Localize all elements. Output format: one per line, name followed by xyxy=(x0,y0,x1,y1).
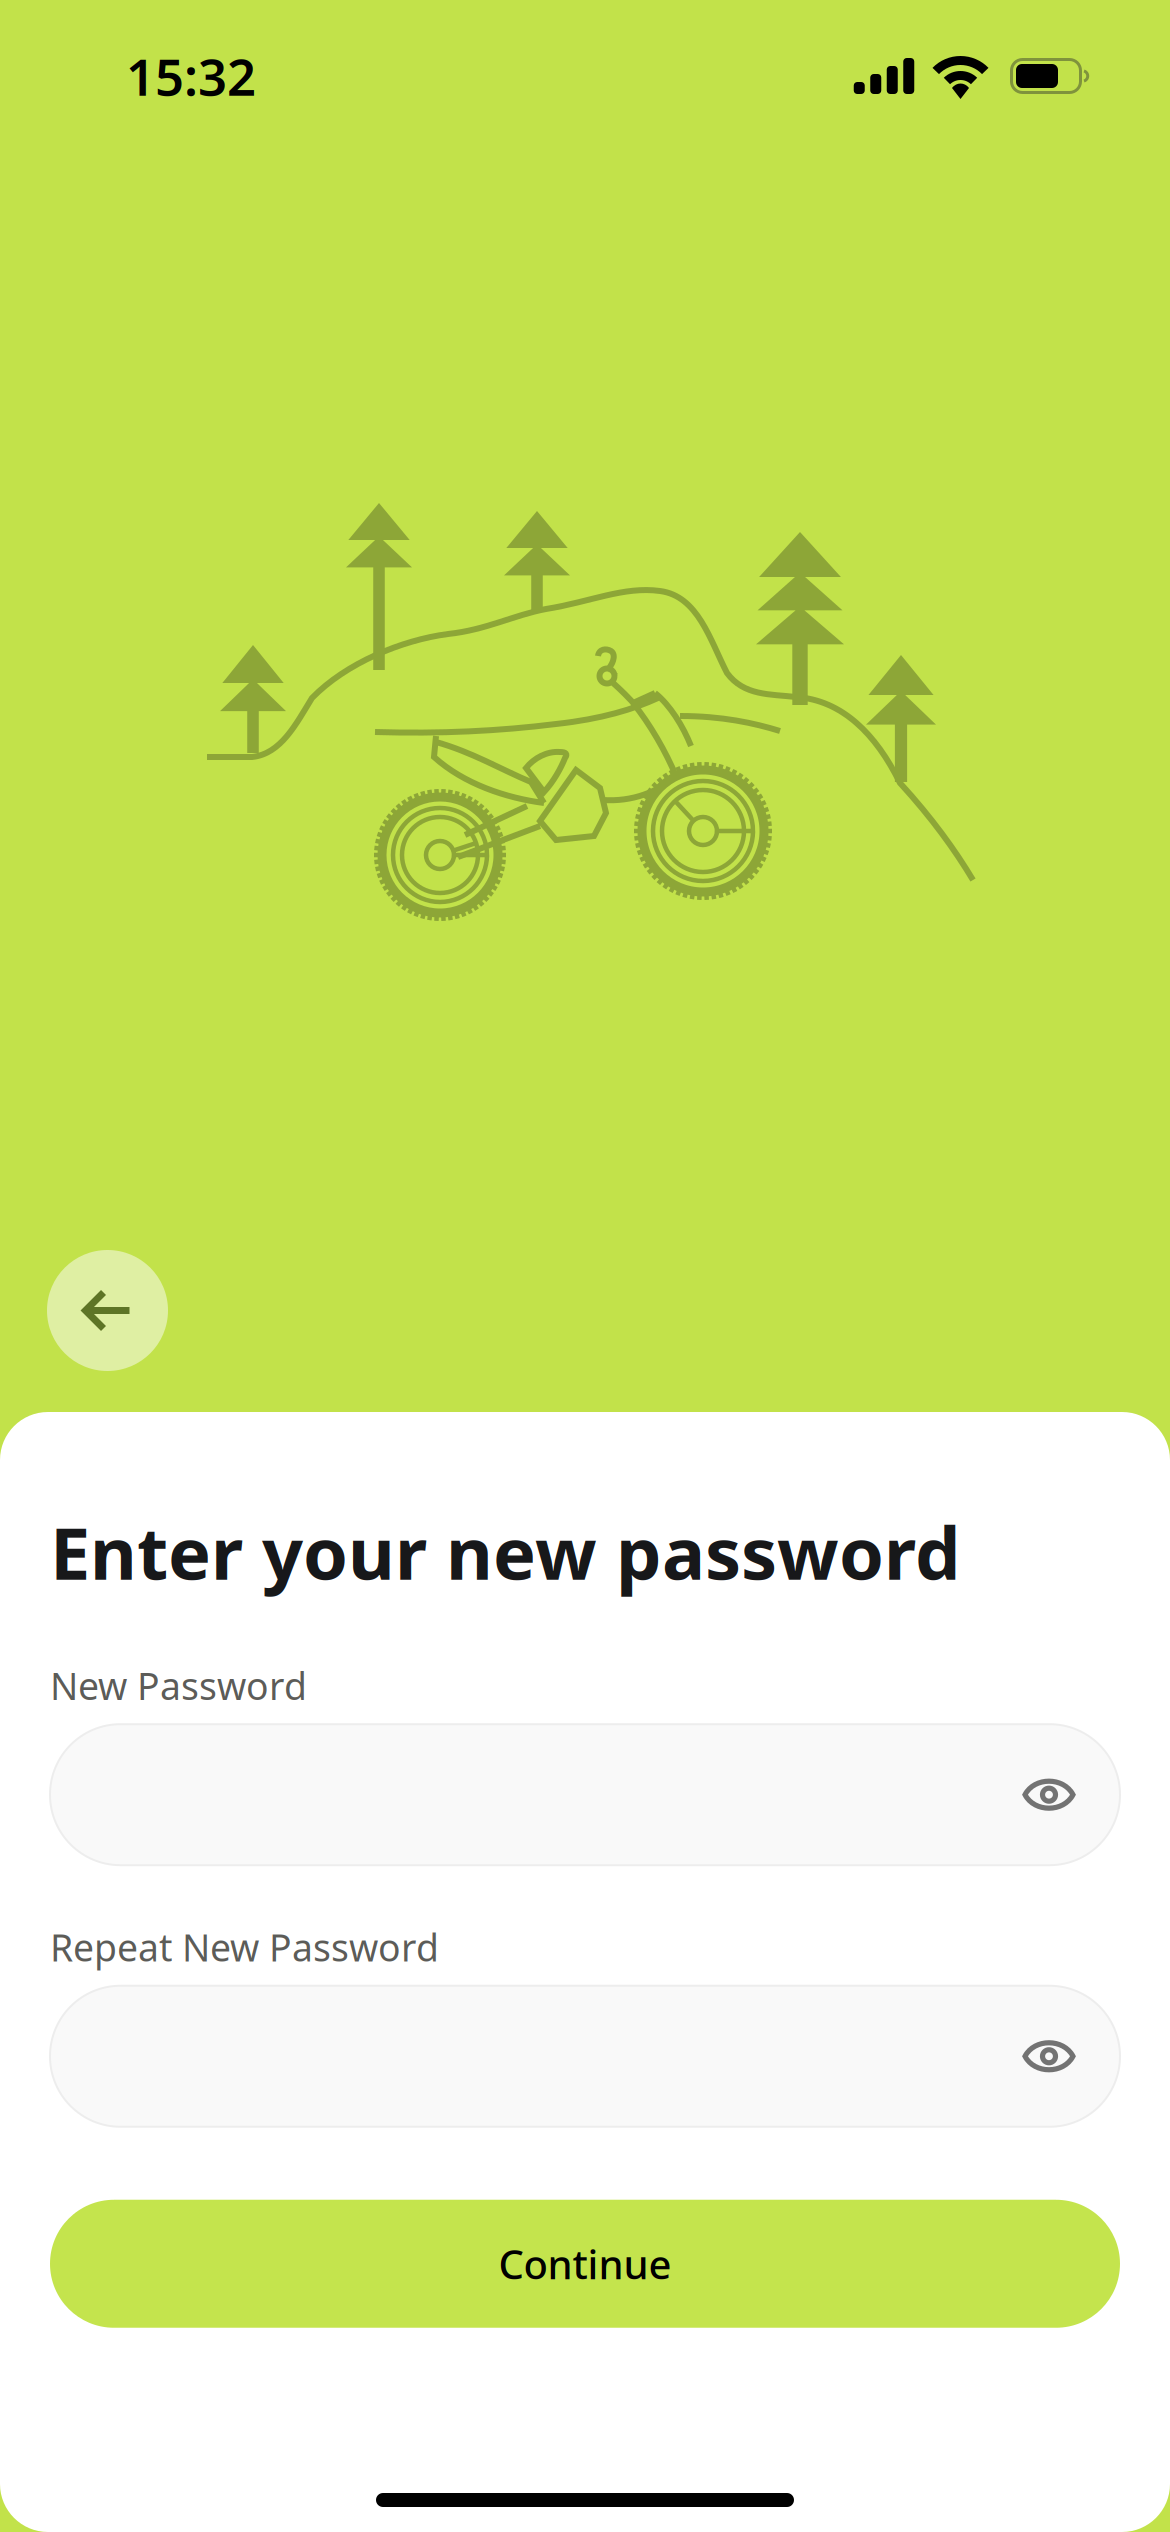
staticText: Enter your new password xyxy=(50,1504,961,1600)
button[interactable]: Show Repeat New Password xyxy=(50,1986,1120,2127)
button[interactable]: Back xyxy=(47,1250,168,1371)
button[interactable]: Show New Password xyxy=(50,1724,1120,1865)
staticText: Continue xyxy=(498,2237,671,2290)
staticText: 15:32 xyxy=(126,42,256,110)
button[interactable]: Continue xyxy=(50,2200,1120,2328)
staticText: New Password xyxy=(50,1661,307,1710)
staticText: Repeat New Password xyxy=(50,1922,439,1972)
